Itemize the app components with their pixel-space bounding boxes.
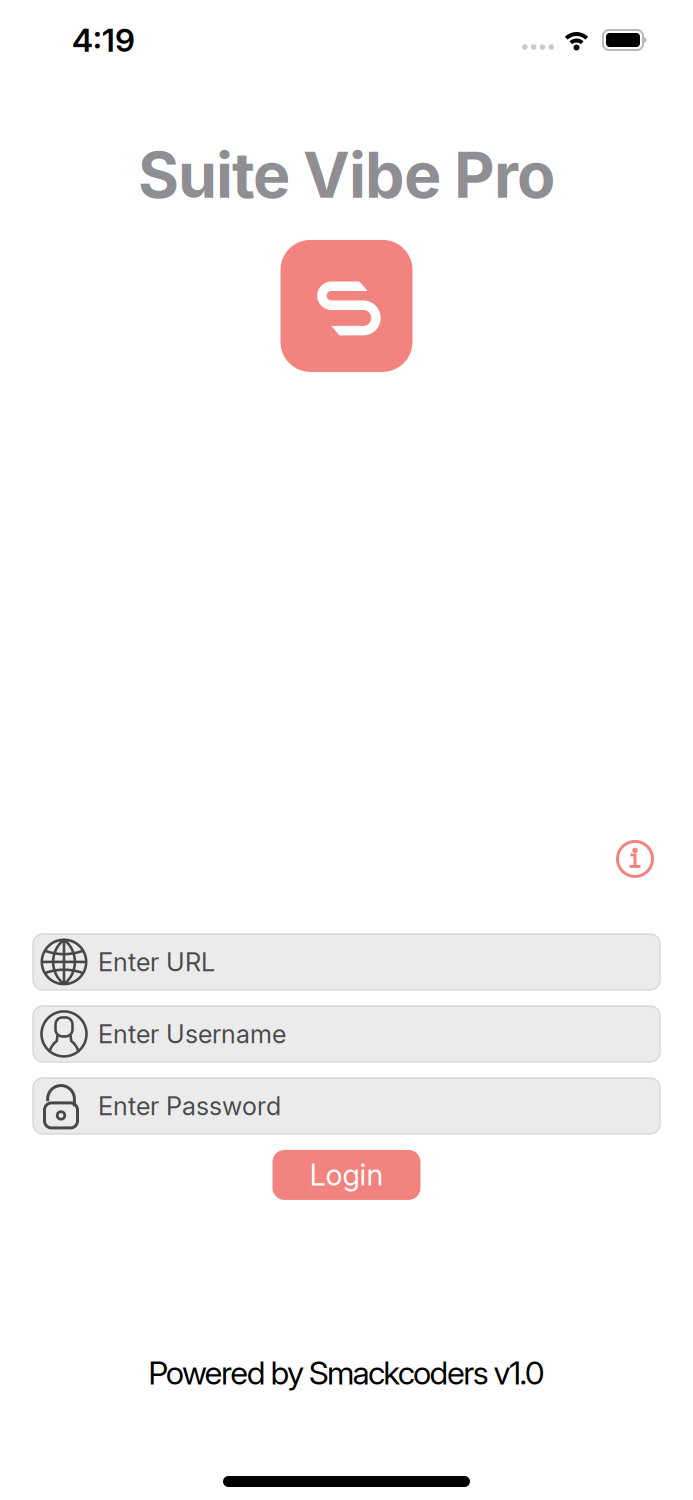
staticText: Suite Vibe Pro	[138, 138, 555, 212]
staticText: Enter URL	[98, 947, 215, 977]
button[interactable]: Enter URL	[33, 934, 660, 990]
staticText: Powered by Smackcoders v1.0	[148, 1354, 545, 1392]
button[interactable]: Info	[613, 837, 657, 881]
staticText: 4:19	[72, 21, 135, 59]
button[interactable]: Enter Password	[33, 1078, 660, 1134]
staticText: Login	[309, 1158, 383, 1192]
button[interactable]: Login	[272, 1150, 420, 1200]
staticText: Enter Username	[98, 1019, 286, 1049]
button[interactable]: Enter Username	[33, 1006, 660, 1062]
staticText: Enter Password	[98, 1091, 281, 1121]
